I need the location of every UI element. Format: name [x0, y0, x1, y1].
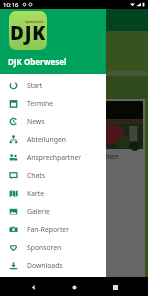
- staticText: DJK Oberwesel: [8, 56, 67, 67]
- staticText: 10:16: [3, 1, 19, 9]
- button[interactable]: Ansprechpartner: [0, 148, 106, 166]
- button[interactable]: Downloads: [0, 256, 106, 274]
- staticText: Abteilungen: [27, 135, 66, 144]
- button[interactable]: Recents: [107, 279, 123, 295]
- staticText: Start: [27, 81, 43, 90]
- staticText: Der DJK Oberwesel bietet Ihnen: [7, 151, 119, 161]
- staticText: Karte: [27, 189, 45, 198]
- button[interactable]: Chats: [0, 166, 106, 184]
- staticText: Fan-Reporter: [27, 225, 69, 234]
- button[interactable]: News: [0, 112, 106, 130]
- button[interactable]: Abteilungen: [0, 130, 106, 148]
- button[interactable]: Karte: [0, 184, 106, 202]
- staticText: Ansprechpartner: [27, 153, 82, 162]
- staticText: Downloads: [27, 261, 63, 270]
- button[interactable]: Galerie: [0, 202, 106, 220]
- staticText: Für jeden etwas, jedem ein Geschmack: [7, 268, 102, 286]
- button[interactable]: Termine: [0, 94, 106, 112]
- staticText: Glaube: [14, 82, 45, 94]
- button[interactable]: Home: [66, 279, 82, 295]
- button[interactable]: Back: [25, 279, 41, 295]
- staticText: Sportverein: [25, 20, 44, 24]
- staticText: Galerie: [27, 207, 50, 216]
- button[interactable]: Sponsoren: [0, 238, 106, 256]
- staticText: News: [27, 117, 45, 126]
- staticText: Termine: [27, 99, 54, 108]
- staticText: DJK: [10, 20, 47, 46]
- staticText: Sport Spaß Spiel: [7, 182, 27, 208]
- staticText: Sponsoren: [27, 243, 62, 252]
- button[interactable]: Fan-Reporter: [0, 220, 106, 238]
- staticText: Unsere Übungsleiter sind qualifiziert, s…: [7, 220, 101, 254]
- button[interactable]: Start: [0, 76, 106, 94]
- staticText: Chats: [27, 171, 46, 180]
